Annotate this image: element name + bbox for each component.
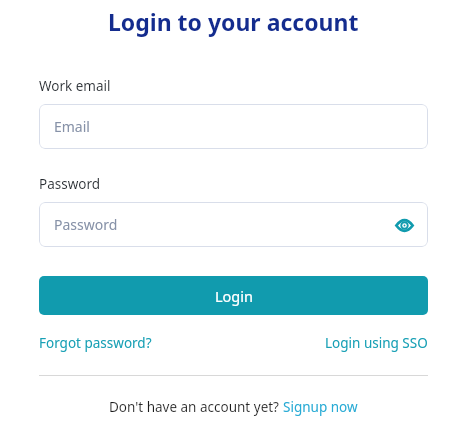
button[interactable]: Show password [390, 211, 418, 239]
button[interactable]: Signup now [283, 398, 358, 416]
staticText: Login using SSO [325, 334, 428, 352]
button[interactable]: Email [39, 104, 428, 149]
staticText: Signup now [283, 398, 358, 416]
button[interactable]: Password [39, 202, 428, 247]
staticText: Email [54, 117, 90, 136]
button[interactable]: Forgot password? [39, 334, 152, 352]
button[interactable]: Login [39, 276, 428, 315]
staticText: Password [54, 215, 118, 234]
staticText: Login [215, 286, 253, 306]
button[interactable]: Login using SSO [325, 334, 428, 352]
staticText: Don't have an account yet? [109, 398, 279, 416]
staticText: Work email [39, 77, 111, 95]
staticText: Forgot password? [39, 334, 152, 352]
staticText: Password [39, 175, 101, 193]
staticText: Login to your account [108, 6, 359, 37]
